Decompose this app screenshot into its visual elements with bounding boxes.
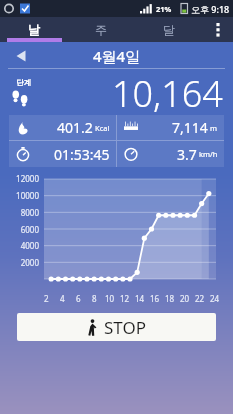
button[interactable]: Previous day xyxy=(8,43,34,69)
staticText: 단계 xyxy=(16,78,31,87)
button[interactable]: 날 xyxy=(0,17,67,42)
staticText: Kcal xyxy=(95,123,110,133)
button[interactable]: 01:53:45 xyxy=(9,141,116,167)
staticText: 10,164 xyxy=(112,69,223,115)
staticText: STOP xyxy=(104,316,147,339)
staticText: 2 xyxy=(44,293,49,304)
button[interactable]: STOP xyxy=(17,313,216,341)
button[interactable]: 3.7 xyxy=(117,141,224,167)
staticText: km/h xyxy=(199,149,218,159)
staticText: 8 xyxy=(92,293,97,304)
staticText: 날 xyxy=(28,22,40,37)
button[interactable]: More options xyxy=(203,17,233,42)
staticText: 6000 xyxy=(20,224,39,235)
staticText: 4월4일 xyxy=(93,46,141,66)
staticText: 16 xyxy=(150,293,160,304)
staticText: 2000 xyxy=(20,257,39,268)
staticText: 20 xyxy=(180,293,190,304)
staticText: 12 xyxy=(120,293,130,304)
staticText: 10000 xyxy=(16,190,39,201)
staticText: 4 xyxy=(60,293,65,304)
staticText: 22 xyxy=(195,293,205,304)
staticText: 14 xyxy=(135,293,145,304)
staticText: 01:53:45 xyxy=(54,145,110,164)
staticText: 주 xyxy=(95,22,107,37)
staticText: 오후 9:18 xyxy=(191,3,230,15)
staticText: 21% xyxy=(156,4,172,14)
staticText: 7,114 xyxy=(172,118,208,137)
staticText: 10 xyxy=(105,293,115,304)
staticText: 8000 xyxy=(20,207,39,218)
button[interactable]: 401.2 xyxy=(9,115,116,140)
button[interactable]: 7,114 xyxy=(117,115,224,140)
staticText: 12000 xyxy=(16,173,39,184)
button[interactable]: 달 xyxy=(135,17,203,42)
staticText: 6 xyxy=(76,293,81,304)
staticText: 3.7 xyxy=(177,145,197,164)
staticText: 18 xyxy=(165,293,175,304)
button[interactable]: 주 xyxy=(67,17,135,42)
staticText: 달 xyxy=(163,22,175,37)
staticText: m xyxy=(210,123,218,133)
staticText: 401.2 xyxy=(57,118,93,137)
staticText: 4000 xyxy=(20,240,39,251)
staticText: 24 xyxy=(210,293,220,304)
